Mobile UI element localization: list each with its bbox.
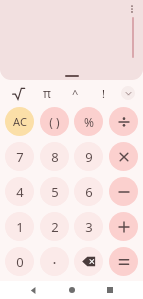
button[interactable]: 7 [5,142,34,171]
button[interactable]: Divide [109,107,138,136]
button[interactable]: % [74,107,103,136]
staticText: AC [13,114,27,129]
button[interactable]: 3 [74,212,103,241]
button[interactable]: 5 [40,177,69,206]
staticText: 1 [16,218,24,236]
button[interactable]: Plus [109,212,138,241]
button[interactable]: Minus [109,177,138,206]
staticText: 8 [51,148,59,166]
button[interactable]: 1 [5,212,34,241]
button[interactable]: Back [24,281,42,299]
button[interactable]: 2 [40,212,69,241]
staticText: ( ) [49,114,60,130]
button[interactable]: ^ [61,80,89,106]
button[interactable]: More functions [121,86,135,100]
staticText: 9 [85,148,93,166]
staticText: 0 [16,253,24,271]
button[interactable]: · [40,247,69,276]
staticText: 2 [51,218,59,236]
staticText: ! [102,86,105,101]
staticText: 5 [51,183,59,201]
staticText: % [84,114,94,130]
button[interactable]: ( ) [40,107,69,136]
button[interactable]: Square root [4,80,33,106]
button[interactable]: Equals [109,247,138,276]
staticText: 4 [16,183,24,201]
button[interactable]: Multiply [109,142,138,171]
staticText: 6 [85,183,93,201]
button[interactable]: AC [5,107,34,136]
staticText: 7 [16,148,24,166]
staticText: 3 [85,218,93,236]
button[interactable]: 4 [5,177,34,206]
staticText: · [52,252,57,272]
button[interactable]: Backspace [74,247,103,276]
button[interactable]: 0 [5,247,34,276]
button[interactable]: 8 [40,142,69,171]
button[interactable]: π [33,80,61,106]
button[interactable]: More options [125,2,139,16]
staticText: ^ [72,86,79,101]
button[interactable]: 9 [74,142,103,171]
staticText: π [43,85,51,101]
button[interactable]: Recent apps [101,281,119,299]
button[interactable]: ! [89,80,117,106]
button[interactable]: 6 [74,177,103,206]
button[interactable]: Home [63,281,81,299]
